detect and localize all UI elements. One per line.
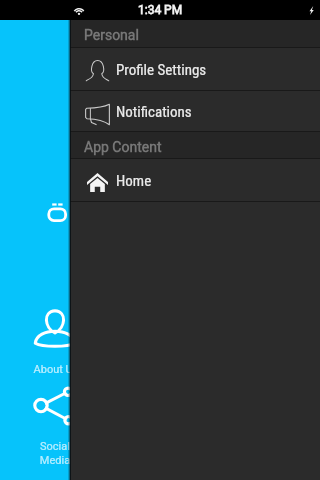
staticText: App Content xyxy=(84,139,162,155)
staticText: Personal xyxy=(84,27,139,43)
staticText: Home xyxy=(116,172,152,190)
staticText: Notifications xyxy=(116,103,192,121)
staticText: Profile Settings xyxy=(116,61,207,79)
staticText: 1:34 PM xyxy=(138,3,183,17)
other: Wi-Fi xyxy=(73,4,85,15)
button[interactable]: Home xyxy=(70,159,320,202)
button[interactable]: Shop xyxy=(47,202,67,222)
button[interactable]: Profile Settings xyxy=(70,48,320,91)
button[interactable]: Social Media xyxy=(12,384,96,468)
button[interactable]: About Us xyxy=(12,306,96,376)
button[interactable]: Notifications xyxy=(70,91,320,132)
staticText: About Us xyxy=(14,363,98,376)
other: Charging xyxy=(309,6,314,15)
staticText: Social Media xyxy=(13,440,97,467)
